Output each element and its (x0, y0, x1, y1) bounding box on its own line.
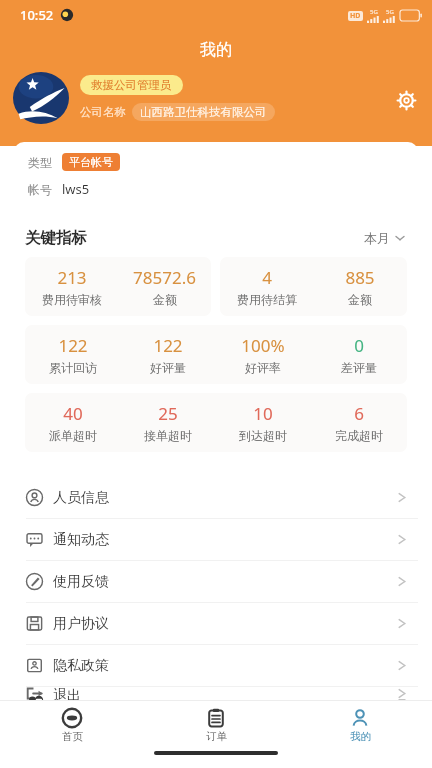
staticText: 类型 (28, 155, 52, 170)
staticText: 本月 (364, 230, 390, 246)
button[interactable]: Settings (388, 82, 424, 118)
staticText: 122 (153, 334, 183, 357)
staticText: 金额 (348, 292, 372, 307)
staticText: 5G (386, 8, 394, 16)
staticText: 首页 (62, 730, 83, 743)
button[interactable]: 隐私政策 (14, 645, 418, 686)
staticText: 213 (57, 266, 87, 289)
staticText: 78572.6 (133, 266, 196, 289)
staticText: 金额 (153, 292, 177, 307)
staticText: 隐私政策 (53, 657, 109, 675)
staticText: 累计回访 (49, 360, 97, 375)
staticText: 差评量 (341, 360, 377, 375)
button[interactable]: 通知动态 (14, 519, 418, 560)
staticText: 5G (370, 8, 378, 16)
staticText: 6 (354, 402, 364, 425)
staticText: 救援公司管理员 (91, 78, 172, 92)
button[interactable]: 首页 (0, 701, 144, 749)
button[interactable]: 我的 (288, 701, 432, 749)
staticText: 885 (345, 266, 375, 289)
button[interactable]: 使用反馈 (14, 561, 418, 602)
staticText: 100% (241, 334, 285, 357)
staticText: 0 (354, 334, 364, 357)
staticText: 10 (253, 402, 273, 425)
staticText: 我的 (350, 730, 371, 743)
staticText: 订单 (206, 730, 227, 743)
button[interactable]: 订单 (144, 701, 288, 749)
button[interactable]: 用户协议 (14, 603, 418, 644)
staticText: 我的 (200, 40, 232, 60)
staticText: 40 (63, 402, 83, 425)
staticText: 退出 (53, 687, 81, 700)
button[interactable]: 本月 (362, 228, 407, 248)
staticText: 使用反馈 (53, 573, 109, 591)
staticText: 公司名称 (80, 105, 126, 119)
staticText: 派单超时 (49, 428, 97, 443)
staticText: 完成超时 (335, 428, 383, 443)
staticText: 25 (158, 402, 178, 425)
staticText: 用户协议 (53, 615, 109, 633)
staticText: 到达超时 (239, 428, 287, 443)
staticText: 10:52 (20, 6, 54, 24)
staticText: 帐号 (28, 182, 52, 197)
staticText: HD (350, 11, 361, 21)
staticText: 人员信息 (53, 489, 109, 507)
staticText: 费用待审核 (42, 292, 102, 307)
staticText: 好评量 (150, 360, 186, 375)
staticText: 4 (262, 266, 272, 289)
staticText: 费用待结算 (237, 292, 297, 307)
staticText: 关键指标 (25, 228, 87, 248)
button[interactable]: 人员信息 (14, 477, 418, 518)
staticText: 122 (58, 334, 88, 357)
staticText: 接单超时 (144, 428, 192, 443)
staticText: 好评率 (245, 360, 281, 375)
button[interactable]: 退出 (14, 687, 418, 700)
staticText: 山西路卫仕科技有限公司 (140, 105, 267, 119)
staticText: lws5 (62, 180, 90, 198)
staticText: 平台帐号 (69, 155, 113, 169)
staticText: 通知动态 (53, 531, 109, 549)
